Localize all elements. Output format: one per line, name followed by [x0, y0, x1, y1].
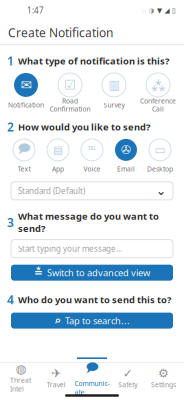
staticText: ⌄	[156, 184, 166, 198]
staticText: ✈	[51, 367, 61, 380]
staticText: 🗩	[85, 359, 98, 379]
button[interactable]: ⌕	[11, 313, 173, 329]
staticText: Desktop	[147, 164, 173, 173]
staticText: 🗩	[17, 140, 30, 160]
staticText: App	[52, 164, 64, 173]
button[interactable]: Start typing your message...	[11, 240, 173, 258]
staticText: ▥	[108, 78, 119, 92]
button[interactable]: 🗩	[7, 139, 41, 175]
button[interactable]: ✓	[110, 363, 145, 391]
staticText: Text	[17, 164, 30, 173]
button[interactable]: ⁂	[136, 73, 180, 111]
button[interactable]: Standard (Default)	[11, 182, 173, 200]
staticText: Voice	[83, 164, 100, 173]
staticText: Settings	[151, 380, 176, 389]
staticText: How would you like to send?	[18, 121, 150, 133]
button[interactable]: ℡	[75, 139, 109, 175]
staticText: ▯	[172, 7, 176, 14]
staticText: Notification	[8, 100, 44, 109]
staticText: Survey	[103, 100, 124, 109]
staticText: ✉	[20, 77, 31, 92]
staticText: ◌	[142, 6, 146, 15]
button[interactable]: ✈	[39, 363, 74, 391]
staticText: ⁂	[151, 77, 164, 93]
staticText: Threat Intel	[10, 376, 31, 393]
staticText: Email	[117, 164, 135, 173]
staticText: Travel	[47, 380, 66, 389]
staticText: ℡	[87, 143, 96, 157]
button[interactable]: ▭	[143, 139, 177, 175]
button[interactable]: ✉	[4, 73, 48, 111]
staticText: ✓	[123, 367, 133, 380]
staticText: ◑	[148, 7, 154, 14]
staticText: Call	[152, 104, 164, 113]
staticText: ▼	[157, 7, 162, 14]
staticText: ▭	[154, 143, 165, 157]
staticText: 1:47	[27, 5, 44, 16]
staticText: 3	[7, 214, 14, 230]
staticText: ⚙	[158, 367, 169, 380]
button[interactable]: ☑	[48, 73, 92, 111]
button[interactable]: ≛	[11, 265, 173, 281]
button[interactable]: ▥	[92, 73, 136, 111]
staticText: Safety	[118, 380, 137, 389]
staticText: 1	[7, 53, 14, 69]
staticText: Conference	[140, 97, 176, 105]
staticText: 2	[7, 119, 14, 135]
staticText: Start typing your message...	[18, 243, 122, 254]
staticText: Communicate	[74, 379, 109, 397]
staticText: ☑	[64, 77, 76, 92]
staticText: Who do you want to send this to?	[18, 293, 171, 306]
staticText: Tap to search...	[65, 314, 130, 327]
staticText: ▤	[53, 144, 63, 156]
button[interactable]: ⚙	[146, 363, 181, 391]
staticText: Create Notification	[8, 24, 113, 40]
staticText: Road	[62, 97, 78, 105]
staticText: Standard (Default)	[18, 186, 85, 196]
button[interactable]: 🗩	[74, 363, 109, 391]
button[interactable]: ◍	[3, 363, 38, 391]
button[interactable]: ▤	[41, 139, 75, 175]
staticText: ◢	[164, 7, 169, 14]
staticText: ⌕	[54, 314, 61, 327]
staticText: ✇	[121, 143, 131, 157]
staticText: ◍	[15, 362, 25, 376]
button[interactable]: ✇	[109, 139, 143, 175]
staticText: Switch to advanced view	[47, 266, 150, 279]
staticText: 4	[7, 292, 14, 308]
staticText: Confirmation	[49, 104, 90, 113]
staticText: ≛	[34, 267, 43, 279]
staticText: What message do you want to send?	[18, 210, 159, 235]
staticText: What type of notification is this?	[18, 55, 169, 67]
